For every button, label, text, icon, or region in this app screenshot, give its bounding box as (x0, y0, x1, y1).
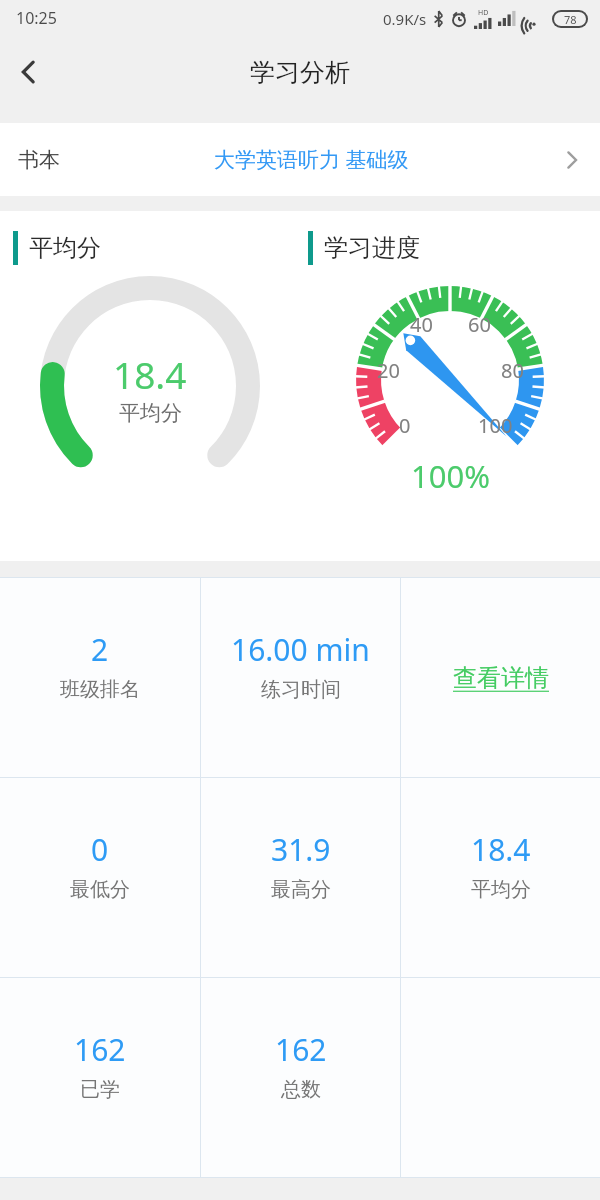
staticText: 书本 (18, 147, 60, 173)
staticText: 已学 (80, 1077, 120, 1102)
staticText: 31.9 (271, 829, 331, 870)
staticText: 班级排名 (60, 677, 140, 702)
staticText: 162 (74, 1029, 126, 1070)
staticText: 总数 (281, 1077, 321, 1102)
button[interactable]: 书本 (0, 123, 600, 196)
staticText: 0.9K/s (383, 9, 427, 29)
staticText: 2 (91, 629, 109, 670)
staticText: 平均分 (119, 400, 182, 426)
staticText: 40 (410, 311, 433, 338)
button[interactable]: 2 (0, 578, 200, 777)
staticText: 0 (399, 412, 411, 439)
button[interactable]: 162 (0, 978, 200, 1177)
staticText: 最高分 (271, 877, 331, 902)
staticText: 100 (478, 412, 513, 439)
staticText: 最低分 (70, 877, 130, 902)
staticText: 查看详情 (453, 663, 549, 693)
staticText: HD (478, 8, 489, 18)
staticText: 练习时间 (261, 677, 341, 702)
staticText: 学习分析 (250, 57, 350, 88)
button[interactable]: Back (0, 43, 58, 101)
staticText: 0 (91, 829, 109, 870)
button[interactable]: 18.4 (401, 778, 600, 977)
button[interactable]: 0 (0, 778, 200, 977)
staticText: 平均分 (29, 233, 101, 263)
staticText: 20 (377, 357, 400, 384)
staticText: 60 (468, 311, 491, 338)
staticText: 162 (275, 1029, 327, 1070)
staticText: 80 (501, 357, 524, 384)
staticText: 78 (564, 12, 577, 26)
staticText: 16.00 min (231, 629, 370, 670)
button[interactable]: 16.00 min (201, 578, 400, 777)
staticText: 平均分 (471, 877, 531, 902)
button[interactable]: 162 (201, 978, 400, 1177)
staticText: 学习进度 (324, 233, 420, 263)
staticText: 18.4 (113, 349, 187, 399)
staticText: 100% (411, 455, 490, 497)
staticText: 10:25 (16, 7, 57, 29)
staticText: 18.4 (471, 829, 531, 870)
button[interactable]: 31.9 (201, 778, 400, 977)
staticText: 大学英语听力 基础级 (214, 145, 409, 174)
button[interactable]: 查看详情 (401, 578, 600, 777)
